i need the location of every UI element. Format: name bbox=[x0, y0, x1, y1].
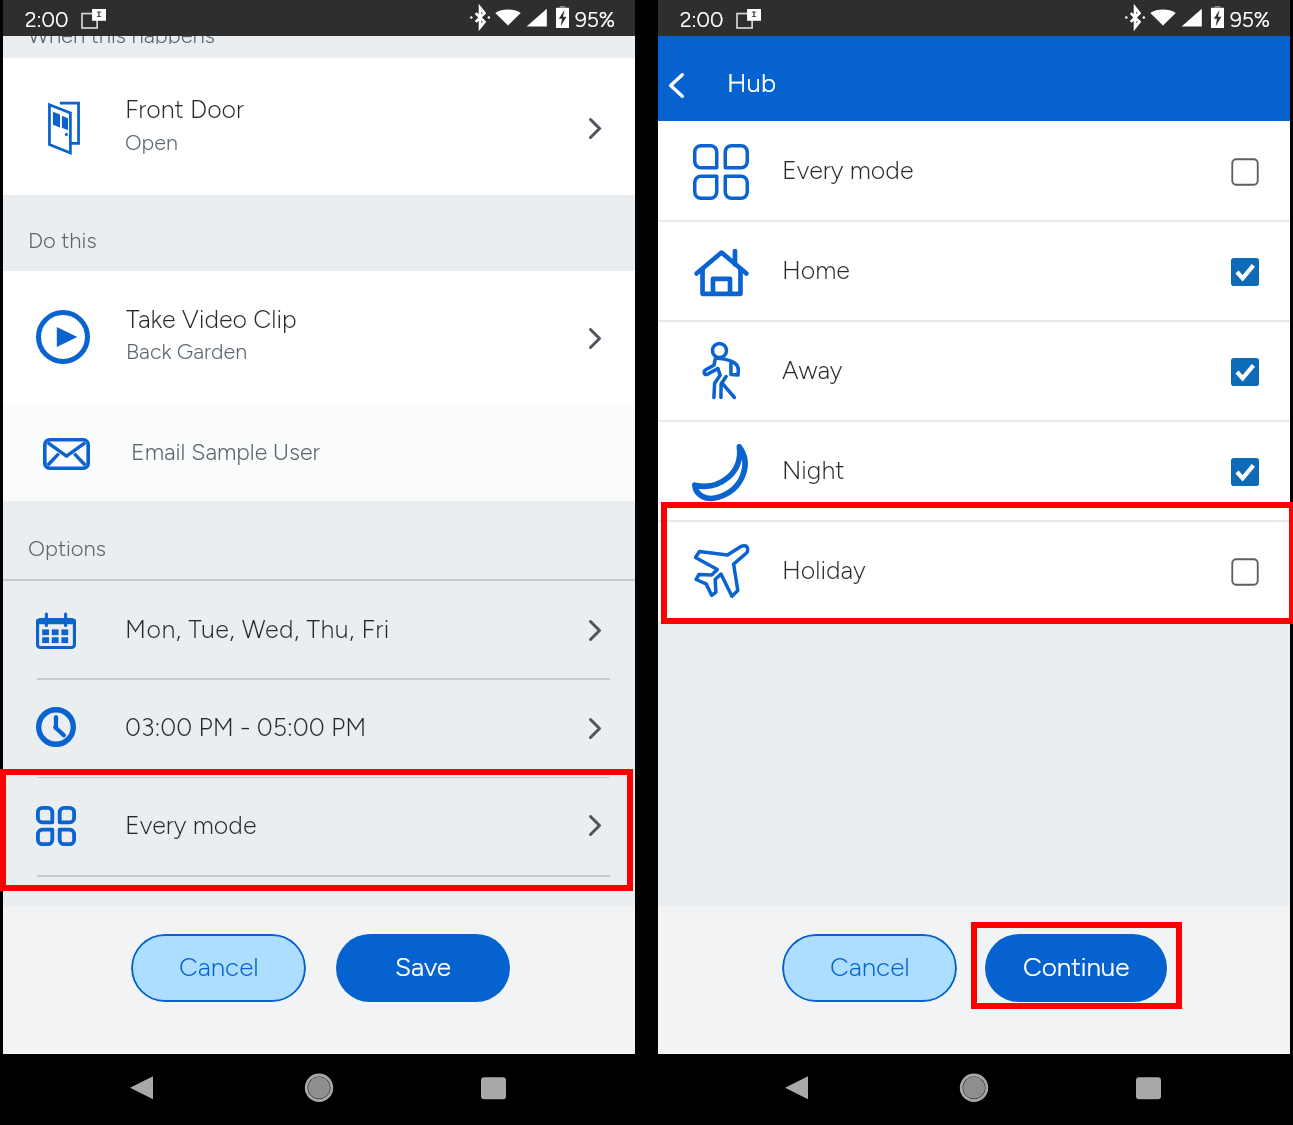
staticText: Front Door bbox=[125, 94, 245, 124]
staticText: When this happens bbox=[28, 22, 216, 44]
button[interactable]: Every mode bbox=[3, 778, 635, 873]
staticText: Mon, Tue, Wed, Thu, Fri bbox=[125, 614, 390, 644]
staticText: Every mode bbox=[782, 155, 914, 185]
button[interactable]: Continue bbox=[985, 934, 1167, 1002]
button[interactable]: Holiday bbox=[658, 521, 1290, 621]
staticText: Save bbox=[395, 951, 451, 982]
button[interactable]: Home bbox=[658, 221, 1290, 321]
button[interactable]: Away bbox=[658, 321, 1290, 421]
button[interactable]: Front Door bbox=[3, 58, 635, 195]
button[interactable]: Email Sample User bbox=[3, 405, 635, 501]
staticText: Home bbox=[782, 255, 850, 285]
staticText: Away bbox=[782, 355, 843, 385]
staticText: Email Sample User bbox=[131, 438, 320, 466]
button[interactable]: Back bbox=[653, 36, 699, 121]
button[interactable]: 03:00 PM - 05:00 PM bbox=[3, 680, 635, 777]
button[interactable]: Every mode bbox=[658, 121, 1290, 221]
staticText: Do this bbox=[28, 227, 97, 253]
staticText: 95% bbox=[575, 7, 616, 32]
staticText: Back Garden bbox=[126, 339, 248, 365]
button[interactable]: Cancel bbox=[131, 934, 306, 1002]
staticText: Night bbox=[782, 455, 845, 485]
staticText: Holiday bbox=[782, 555, 866, 585]
staticText: Options bbox=[28, 535, 107, 561]
button[interactable]: Night bbox=[658, 421, 1290, 521]
button[interactable]: Cancel bbox=[782, 934, 957, 1002]
staticText: 2:00 bbox=[680, 7, 724, 32]
staticText: Cancel bbox=[179, 951, 259, 982]
staticText: 03:00 PM - 05:00 PM bbox=[125, 712, 367, 742]
staticText: 95% bbox=[1230, 7, 1271, 32]
staticText: 2:00 bbox=[25, 7, 69, 32]
staticText: Open bbox=[125, 130, 178, 156]
staticText: Take Video Clip bbox=[126, 304, 297, 334]
staticText: Hub bbox=[727, 67, 777, 98]
button[interactable]: Take Video Clip bbox=[3, 271, 635, 405]
staticText: Every mode bbox=[125, 810, 257, 840]
staticText: Continue bbox=[1023, 951, 1130, 982]
button[interactable]: Save bbox=[336, 934, 510, 1002]
button[interactable]: Mon, Tue, Wed, Thu, Fri bbox=[3, 581, 635, 679]
staticText: Cancel bbox=[830, 951, 910, 982]
